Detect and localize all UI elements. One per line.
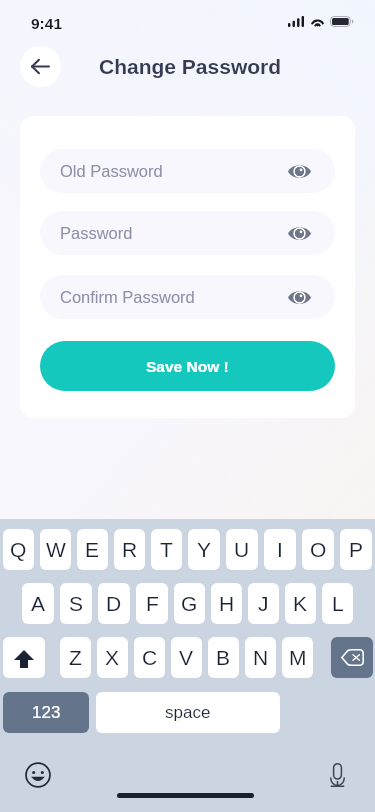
button[interactable]: J xyxy=(248,583,279,624)
button[interactable]: X xyxy=(97,637,128,678)
button[interactable]: P xyxy=(340,529,372,570)
button[interactable]: M xyxy=(282,637,313,678)
button[interactable]: D xyxy=(98,583,130,624)
button[interactable]: O xyxy=(302,529,334,570)
button[interactable]: Voice input xyxy=(317,755,357,795)
button[interactable]: Back xyxy=(20,46,61,87)
button[interactable]: Y xyxy=(188,529,220,570)
staticText: Password xyxy=(60,224,133,242)
button[interactable]: Backspace xyxy=(331,637,373,678)
staticText: S xyxy=(69,592,84,615)
button[interactable]: L xyxy=(322,583,353,624)
staticText: T xyxy=(160,538,173,561)
button[interactable]: W xyxy=(40,529,71,570)
button[interactable]: Password xyxy=(40,211,335,255)
staticText: B xyxy=(216,646,231,669)
staticText: E xyxy=(85,538,100,561)
staticText: Change Password xyxy=(99,55,282,78)
staticText: Confirm Password xyxy=(60,288,195,306)
button[interactable]: N xyxy=(245,637,276,678)
staticText: Y xyxy=(197,538,212,561)
staticText: D xyxy=(106,592,122,615)
button[interactable]: B xyxy=(208,637,239,678)
staticText: L xyxy=(332,592,344,615)
staticText: F xyxy=(146,592,159,615)
staticText: A xyxy=(31,592,46,615)
staticText: Q xyxy=(10,538,27,561)
button[interactable]: Q xyxy=(3,529,34,570)
staticText: space xyxy=(165,703,211,722)
button[interactable]: T xyxy=(151,529,182,570)
button[interactable]: V xyxy=(171,637,202,678)
button[interactable]: G xyxy=(174,583,205,624)
button[interactable]: S xyxy=(60,583,92,624)
staticText: C xyxy=(142,646,158,669)
button[interactable]: C xyxy=(134,637,165,678)
staticText: U xyxy=(234,538,250,561)
staticText: H xyxy=(219,592,235,615)
button[interactable]: Emoji xyxy=(16,753,60,797)
button[interactable]: Shift xyxy=(3,637,45,678)
staticText: X xyxy=(105,646,120,669)
button[interactable]: A xyxy=(22,583,54,624)
button[interactable]: K xyxy=(285,583,316,624)
button[interactable]: E xyxy=(77,529,108,570)
staticText: 9:41 xyxy=(31,15,63,32)
staticText: G xyxy=(181,592,198,615)
staticText: W xyxy=(46,538,66,561)
staticText: V xyxy=(179,646,194,669)
staticText: R xyxy=(122,538,138,561)
staticText: M xyxy=(289,646,307,669)
staticText: 123 xyxy=(32,703,61,722)
button[interactable]: Z xyxy=(60,637,91,678)
staticText: Save Now ! xyxy=(146,358,229,375)
staticText: O xyxy=(310,538,327,561)
button[interactable]: R xyxy=(114,529,145,570)
staticText: Z xyxy=(69,646,82,669)
staticText: Old Password xyxy=(60,162,163,180)
staticText: K xyxy=(293,592,308,615)
staticText: N xyxy=(253,646,269,669)
button[interactable]: 123 xyxy=(3,692,89,733)
button[interactable]: space xyxy=(96,692,280,733)
staticText: I xyxy=(277,538,283,561)
button[interactable]: H xyxy=(211,583,242,624)
button[interactable]: Old Password xyxy=(40,149,335,193)
staticText: J xyxy=(258,592,269,615)
staticText: P xyxy=(349,538,364,561)
button[interactable]: Confirm Password xyxy=(40,275,335,319)
button[interactable]: U xyxy=(226,529,258,570)
button[interactable]: I xyxy=(264,529,296,570)
button[interactable]: F xyxy=(136,583,168,624)
button[interactable]: Save Now ! xyxy=(40,341,335,391)
